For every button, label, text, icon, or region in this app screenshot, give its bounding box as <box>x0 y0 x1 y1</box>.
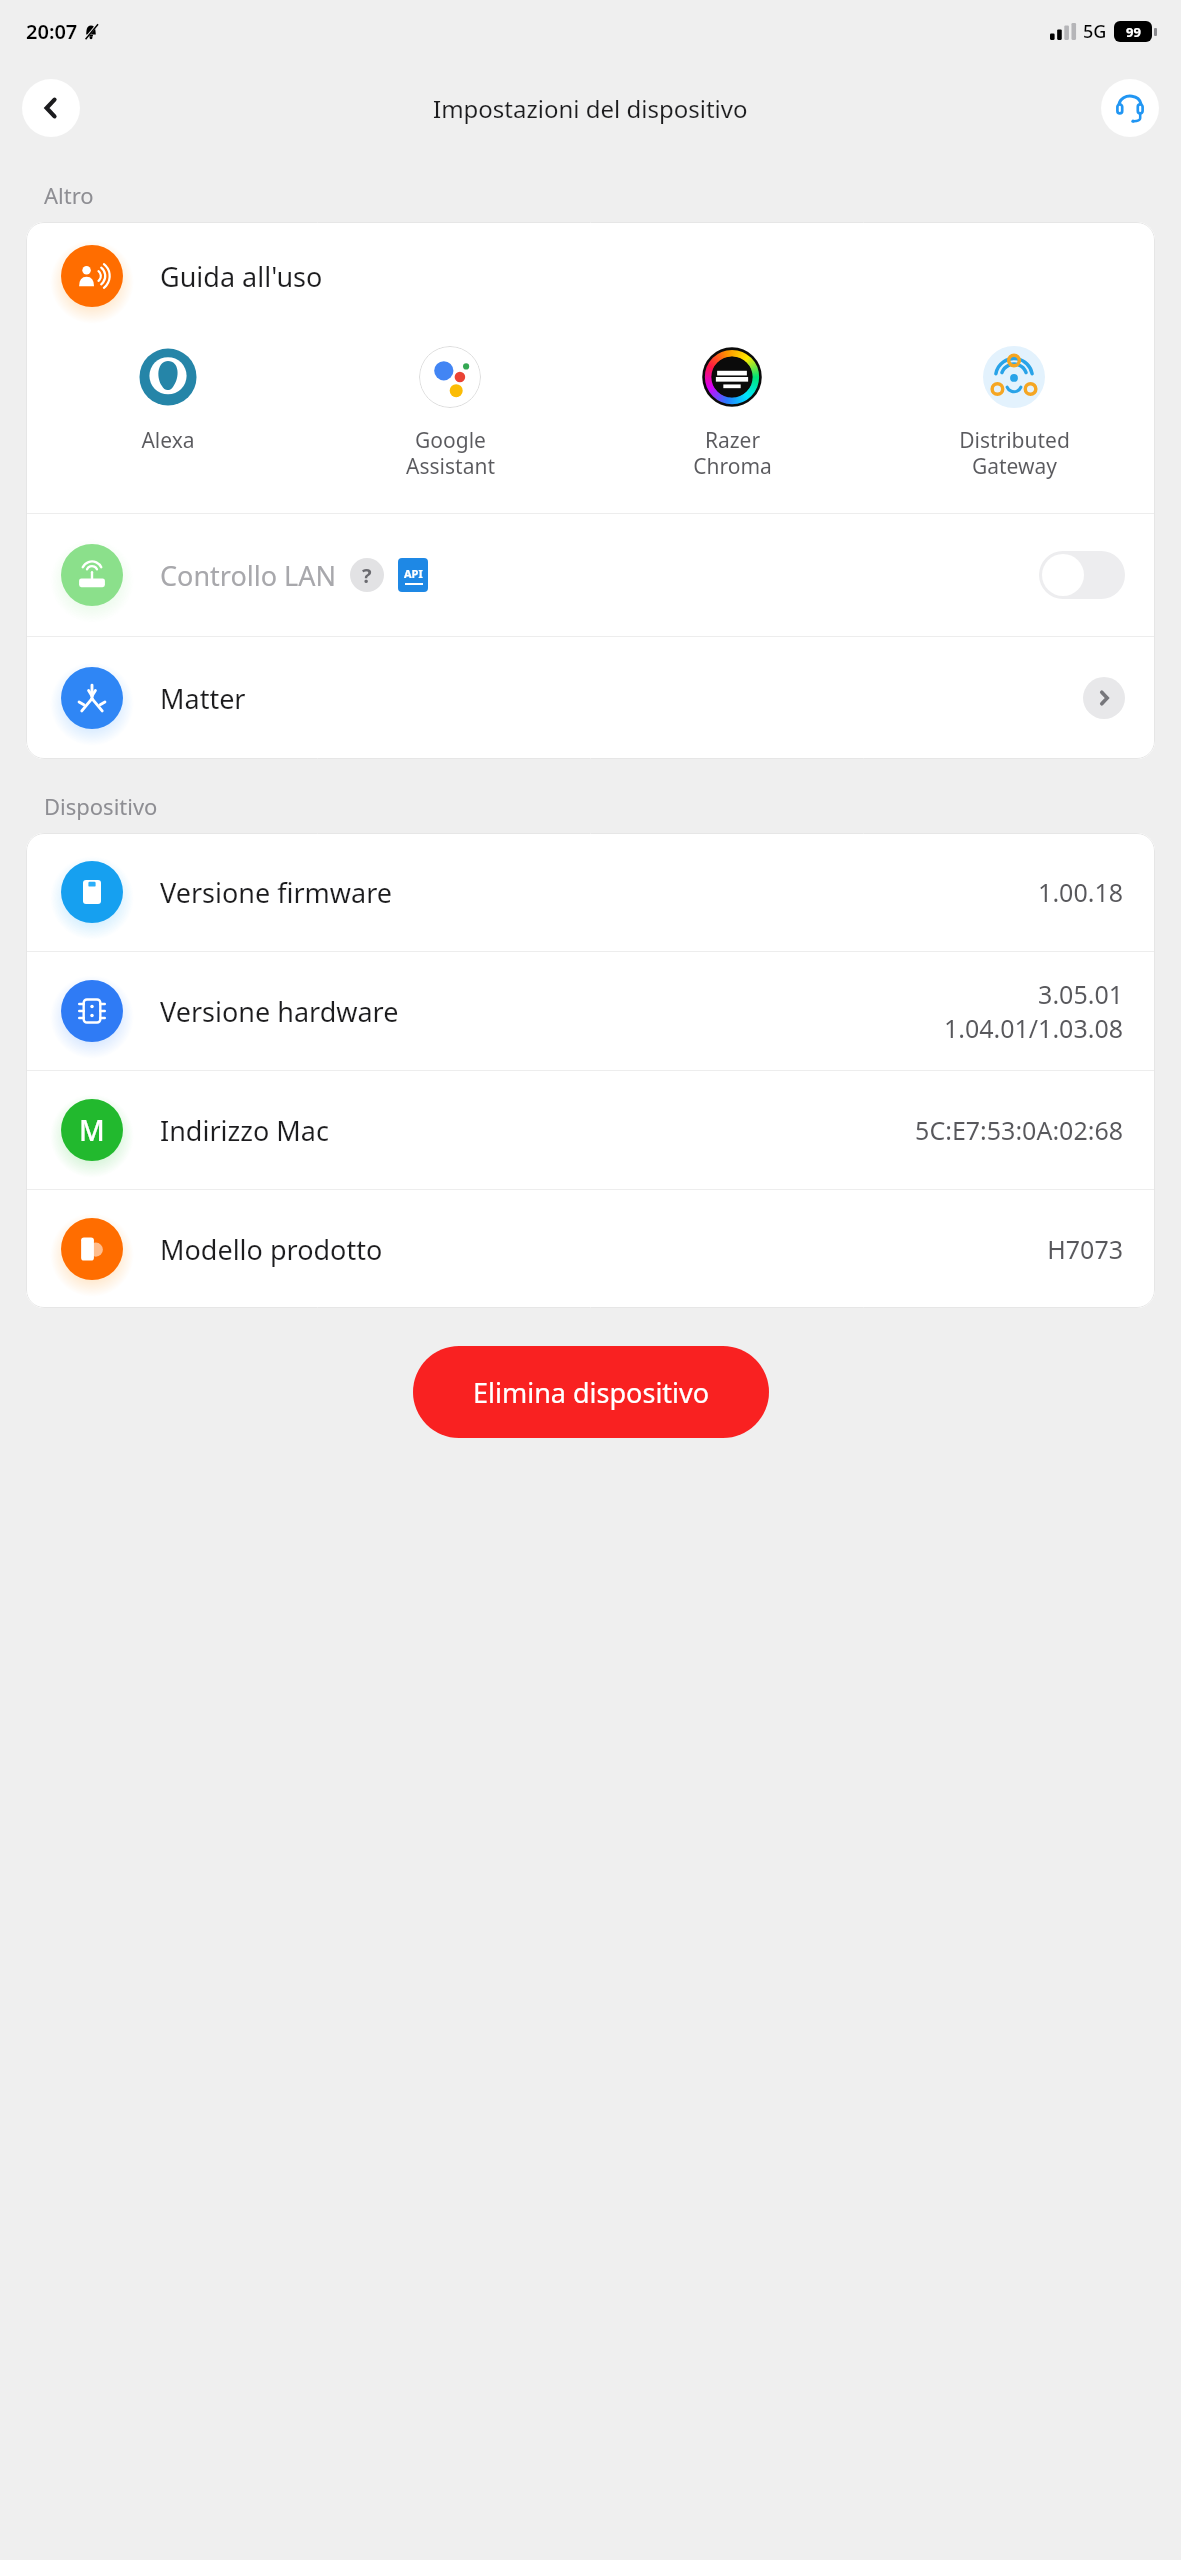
staticText: M <box>79 1111 105 1149</box>
button[interactable]: Google Assistant <box>309 334 591 487</box>
staticText: Google Assistant <box>406 426 495 481</box>
staticText: 1.00.18 <box>1038 875 1123 909</box>
button[interactable]: Controllo LAN <box>26 514 1155 636</box>
staticText: 3.05.01 <box>1038 977 1123 1011</box>
staticText: Alexa <box>141 426 195 455</box>
button[interactable]: Alexa <box>26 334 309 461</box>
button[interactable]: Versione firmware <box>26 833 1155 951</box>
button[interactable]: Elimina dispositivo <box>413 1346 769 1438</box>
staticText: Controllo LAN <box>160 557 336 594</box>
staticText: Modello prodotto <box>160 1231 383 1268</box>
staticText: Altro <box>44 180 94 210</box>
staticText: ? <box>362 562 372 589</box>
button[interactable]: Help <box>350 558 384 592</box>
staticText: API <box>404 566 423 581</box>
button[interactable]: Support <box>1101 79 1159 137</box>
staticText: Dispositivo <box>44 791 158 821</box>
staticText: 20:07 <box>26 18 78 45</box>
button[interactable]: Matter <box>26 637 1155 759</box>
staticText: Versione hardware <box>160 993 399 1030</box>
button[interactable]: Guida all'uso <box>26 222 1155 330</box>
staticText: Matter <box>160 680 246 717</box>
staticText: Guida all'uso <box>160 258 323 295</box>
button[interactable]: LAN control toggle <box>1039 551 1125 599</box>
staticText: 99 <box>1126 23 1141 41</box>
button[interactable]: Razer Chroma <box>591 334 873 487</box>
staticText: Distributed Gateway <box>959 426 1070 481</box>
staticText: Razer Chroma <box>693 426 772 481</box>
staticText: Elimina dispositivo <box>473 1374 710 1411</box>
staticText: 5G <box>1083 19 1107 44</box>
staticText: 5C:E7:53:0A:02:68 <box>915 1113 1123 1147</box>
button[interactable]: Modello prodotto <box>26 1190 1155 1308</box>
button[interactable]: Distributed Gateway <box>873 334 1155 487</box>
staticText: Versione firmware <box>160 874 393 911</box>
staticText: 1.04.01/1.03.08 <box>943 1011 1123 1045</box>
button[interactable]: Back <box>22 79 80 137</box>
staticText: Impostazioni del dispositivo <box>433 92 748 125</box>
staticText: Indirizzo Mac <box>160 1112 329 1149</box>
button[interactable]: Versione hardware <box>26 952 1155 1070</box>
button[interactable]: M <box>26 1071 1155 1189</box>
button[interactable]: API documentation <box>398 558 428 592</box>
staticText: H7073 <box>1047 1232 1123 1266</box>
